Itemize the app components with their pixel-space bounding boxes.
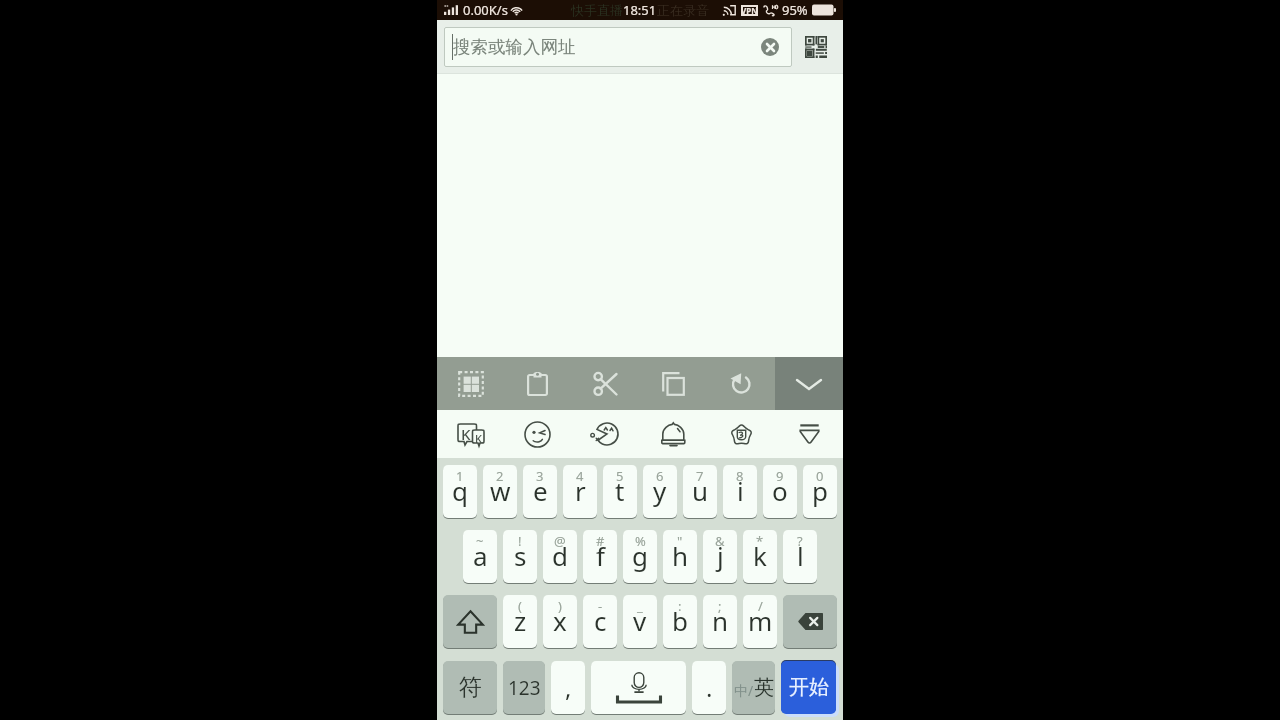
button[interactable]: / <box>743 595 777 648</box>
button[interactable]: & <box>703 530 737 583</box>
button[interactable]: 1 <box>443 465 477 518</box>
staticText: , <box>565 671 572 704</box>
staticText: e <box>533 473 548 508</box>
button[interactable]: Switch keyboard <box>437 410 504 458</box>
staticText: _ <box>637 597 643 615</box>
button[interactable]: ; <box>703 595 737 648</box>
button[interactable]: 2 <box>483 465 517 518</box>
button[interactable]: 5 <box>603 465 637 518</box>
staticText: a <box>473 538 488 573</box>
button[interactable]: Notifications <box>639 410 707 458</box>
staticText: 123 <box>508 675 541 701</box>
staticText: x <box>553 603 567 638</box>
staticText: 符 <box>459 673 482 702</box>
button[interactable]: 中/ <box>732 661 775 714</box>
button[interactable]: 符 <box>443 661 497 714</box>
button[interactable]: ! <box>503 530 537 583</box>
button[interactable]: Emoji <box>504 410 571 458</box>
staticText: i <box>737 473 744 508</box>
button[interactable]: Scan QR code <box>796 27 836 67</box>
button[interactable]: 9 <box>763 465 797 518</box>
staticText: K <box>475 431 482 446</box>
staticText: c <box>594 603 607 638</box>
staticText: ; <box>718 597 722 615</box>
button[interactable]: # <box>583 530 617 583</box>
staticText: 8 <box>736 467 744 485</box>
staticText: k <box>753 538 767 573</box>
button[interactable]: : <box>663 595 697 648</box>
staticText: 开始 <box>789 675 829 700</box>
staticText: 3 <box>536 467 544 485</box>
staticText: v <box>633 603 647 638</box>
button[interactable]: 3 <box>523 465 557 518</box>
staticText: 0 <box>816 467 824 485</box>
staticText: ~ <box>476 532 484 550</box>
button[interactable]: ? <box>783 530 817 583</box>
staticText: 7 <box>696 467 704 485</box>
staticText: r <box>575 473 586 508</box>
button[interactable]: 7 <box>683 465 717 518</box>
staticText: : <box>678 597 682 615</box>
staticText: 9 <box>776 467 784 485</box>
button[interactable] <box>591 661 686 714</box>
staticText: ( <box>518 597 522 615</box>
button[interactable] <box>443 595 497 648</box>
staticText: 英 <box>754 675 774 700</box>
button[interactable]: Select all <box>437 357 504 410</box>
button[interactable]: @ <box>543 530 577 583</box>
staticText: 18:51 <box>623 1 657 19</box>
button[interactable]: % <box>623 530 657 583</box>
button[interactable]: ~ <box>463 530 497 583</box>
staticText: K <box>461 424 471 444</box>
staticText: - <box>598 597 603 615</box>
staticText: 5 <box>616 467 624 485</box>
button[interactable]: 6 <box>643 465 677 518</box>
button[interactable]: Paste <box>504 357 571 410</box>
button[interactable]: * <box>743 530 777 583</box>
staticText: ) <box>558 597 562 615</box>
button[interactable]: 0 <box>803 465 837 518</box>
staticText: 中/ <box>734 681 754 700</box>
staticText: l <box>797 538 804 573</box>
button[interactable]: Collapse panel <box>775 410 843 458</box>
button[interactable]: , <box>551 661 585 714</box>
button[interactable] <box>783 595 837 648</box>
staticText: 搜索或输入网址 <box>453 36 576 58</box>
staticText: f <box>596 538 605 573</box>
staticText: y <box>653 473 667 508</box>
staticText: 2 <box>496 467 504 485</box>
staticText: d <box>552 538 568 573</box>
button[interactable]: " <box>663 530 697 583</box>
button[interactable]: Theme <box>707 410 775 458</box>
button[interactable]: Hide keyboard <box>775 357 843 410</box>
button[interactable]: Clear text <box>761 38 779 56</box>
button[interactable]: Stickers <box>571 410 639 458</box>
staticText: 1 <box>456 467 464 485</box>
staticText: * <box>756 532 764 550</box>
staticText: 正在录音 <box>657 2 709 18</box>
staticText: b <box>672 603 688 638</box>
button[interactable]: 8 <box>723 465 757 518</box>
button[interactable]: ( <box>503 595 537 648</box>
staticText: q <box>452 473 468 508</box>
staticText: h <box>672 538 689 573</box>
staticText: u <box>692 473 709 508</box>
button[interactable]: 123 <box>503 661 545 714</box>
staticText: @ <box>554 532 566 550</box>
button[interactable]: 开始 <box>781 661 836 714</box>
staticText: ! <box>518 532 522 550</box>
button[interactable]: Copy <box>639 357 707 410</box>
button[interactable]: _ <box>623 595 657 648</box>
button[interactable]: . <box>692 661 726 714</box>
button[interactable]: 搜索或输入网址 <box>444 27 792 67</box>
button[interactable]: Undo <box>707 357 775 410</box>
button[interactable]: Cut <box>571 357 639 410</box>
staticText: g <box>632 538 648 573</box>
staticText: z <box>514 603 527 638</box>
button[interactable]: ) <box>543 595 577 648</box>
staticText: " <box>677 532 683 550</box>
staticText: VPN <box>741 5 758 16</box>
button[interactable]: - <box>583 595 617 648</box>
button[interactable]: 4 <box>563 465 597 518</box>
staticText: . <box>706 671 713 704</box>
